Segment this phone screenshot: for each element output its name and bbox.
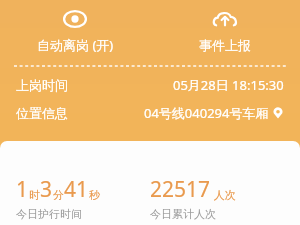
staticText: 上岗时间 (16, 77, 68, 93)
button[interactable]: 自动离岗 (0, 4, 150, 58)
button[interactable]: 事件上报 (150, 5, 300, 57)
staticText: 05月28日 18:15:30 (173, 76, 284, 94)
staticText: 分 (53, 188, 64, 202)
other: 事件上报 (212, 9, 238, 31)
staticText: 今日累计人次 (150, 207, 216, 221)
button[interactable]: 上岗时间 (0, 74, 300, 96)
other: 自动离岗 (62, 8, 88, 30)
staticText: 秒 (89, 188, 100, 202)
staticText: 1 (16, 175, 29, 204)
staticText: 22517 (150, 175, 211, 204)
button[interactable]: 22517 (150, 175, 284, 221)
button[interactable]: 位置信息 (0, 102, 300, 124)
staticText: 事件上报 (199, 37, 251, 53)
button[interactable]: 1 (16, 175, 150, 221)
staticText: 人次 (211, 187, 236, 202)
staticText: 今日护行时间 (16, 207, 82, 221)
staticText: 41 (64, 175, 89, 204)
staticText: 3 (40, 175, 53, 204)
staticText: 自动离岗 (开) (37, 36, 114, 54)
staticText: 位置信息 (16, 105, 68, 121)
staticText: 时 (29, 188, 40, 202)
staticText: 04号线040294号车厢 (144, 104, 269, 122)
